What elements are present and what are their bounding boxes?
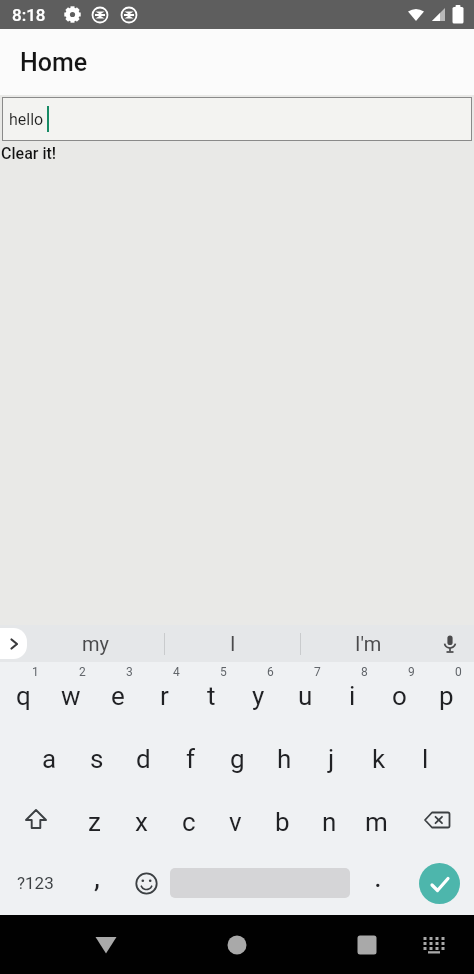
staticText: a [42,744,57,774]
button[interactable] [347,925,387,965]
button[interactable]: v [212,788,259,851]
staticText: , [94,859,100,894]
staticText: hello [9,110,44,129]
button[interactable]: u [282,662,329,725]
button[interactable]: t [188,662,235,725]
staticText: 5 [220,665,227,679]
staticText: my [82,632,110,655]
staticText: 2 [79,665,86,679]
button[interactable]: e [94,662,141,725]
button[interactable]: . [350,851,405,915]
button[interactable]: m [353,788,400,851]
button[interactable]: x [118,788,165,851]
button[interactable]: hello [2,97,472,141]
staticText: 3 [126,665,133,679]
staticText: f [186,744,196,774]
staticText: r [160,681,169,711]
button[interactable]: c [165,788,212,851]
button[interactable]: I [165,625,300,662]
button[interactable]: f [167,725,214,788]
staticText: . [374,859,382,894]
staticText: 8 [361,665,368,679]
button[interactable]: d [120,725,167,788]
button[interactable] [400,788,474,851]
button[interactable]: , [71,851,122,915]
button[interactable]: y [235,662,282,725]
staticText: t [207,681,216,711]
staticText: j [328,744,335,774]
button[interactable]: my [28,625,164,662]
button[interactable]: h [261,725,308,788]
staticText: i [349,681,356,711]
button[interactable]: Clear it! [1,144,57,163]
button[interactable] [416,927,452,963]
button[interactable]: l [402,725,449,788]
staticText: 8:18 [12,5,46,25]
staticText: Home [20,48,88,77]
staticText: m [365,807,388,837]
staticText: 6 [267,665,274,679]
button[interactable]: I'm [301,625,436,662]
staticText: s [90,744,104,774]
button[interactable] [438,632,462,656]
staticText: I [230,632,236,655]
staticText: ?123 [17,873,54,893]
button[interactable]: n [306,788,353,851]
staticText: y [252,681,265,711]
button[interactable]: p [423,662,470,725]
staticText: x [135,807,148,837]
staticText: u [298,681,313,711]
button[interactable]: a [26,725,73,788]
staticText: q [16,681,31,711]
button[interactable] [217,925,257,965]
button[interactable]: o [376,662,423,725]
button[interactable]: g [214,725,261,788]
staticText: p [439,681,454,711]
staticText: g [230,744,245,774]
button[interactable]: ?123 [0,851,71,915]
button[interactable]: j [308,725,355,788]
button[interactable]: s [73,725,120,788]
button[interactable] [0,788,71,851]
button[interactable]: w [47,662,94,725]
staticText: c [182,807,196,837]
staticText: z [88,807,101,837]
button[interactable] [122,851,170,915]
staticText: o [392,681,407,711]
button[interactable] [86,925,126,965]
staticText: b [275,807,290,837]
button[interactable]: k [355,725,402,788]
button[interactable] [0,628,27,659]
staticText: I'm [355,632,382,655]
button[interactable]: i [329,662,376,725]
staticText: v [229,807,242,837]
staticText: 0 [455,665,462,679]
button[interactable] [419,863,460,904]
button[interactable]: z [71,788,118,851]
staticText: h [277,744,292,774]
button[interactable]: r [141,662,188,725]
staticText: e [111,681,125,711]
staticText: 9 [408,665,415,679]
staticText: k [372,744,386,774]
staticText: n [322,807,337,837]
staticText: d [136,744,151,774]
button[interactable]: q [0,662,47,725]
staticText: 7 [314,665,321,679]
staticText: w [61,681,81,711]
staticText: l [422,744,429,774]
staticText: 1 [32,665,39,679]
button[interactable]: b [259,788,306,851]
staticText: 4 [173,665,180,679]
